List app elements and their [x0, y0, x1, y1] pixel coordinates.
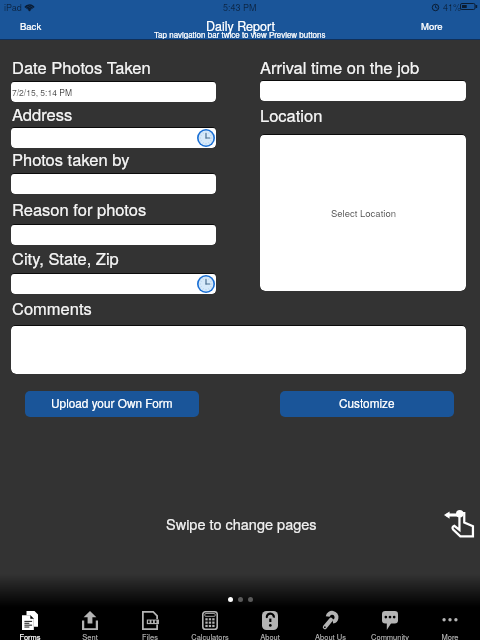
button[interactable]: More [420, 608, 480, 640]
staticText: Address [12, 102, 73, 126]
button[interactable] [11, 225, 216, 245]
staticText: Forms [19, 631, 41, 640]
staticText: Customize [339, 394, 395, 411]
staticText: About Us [315, 631, 346, 640]
button[interactable]: Community [360, 608, 420, 640]
staticText: Upload your Own Form [51, 394, 173, 411]
staticText: iPad [4, 1, 22, 14]
staticText: Files [142, 631, 158, 640]
button[interactable] [11, 128, 216, 148]
button[interactable]: Upload your Own Form [25, 391, 199, 417]
staticText: Date Photos Taken [12, 55, 151, 79]
staticText: 7/2/15, 5:14 PM [12, 86, 73, 98]
staticText: Reason for photos [12, 197, 147, 221]
button[interactable]: Back [10, 16, 52, 36]
staticText: Sent [82, 631, 98, 640]
staticText: Location [260, 103, 323, 127]
button[interactable]: Calculators [180, 608, 240, 640]
button[interactable]: Swipe to change pages [444, 510, 474, 537]
button[interactable]: Forms [0, 608, 60, 640]
button[interactable] [11, 174, 216, 194]
button[interactable]: Sent [60, 608, 120, 640]
staticText: Comments [12, 296, 92, 320]
staticText: More [441, 631, 459, 640]
button[interactable]: More [411, 16, 453, 36]
staticText: Photos taken by [12, 147, 130, 171]
button[interactable]: Files [120, 608, 180, 640]
button[interactable] [11, 274, 216, 294]
staticText: Back [20, 19, 42, 33]
staticText: 5:43 PM [223, 1, 257, 14]
button[interactable] [260, 81, 466, 101]
button[interactable]: Customize [280, 391, 454, 417]
staticText: About [260, 631, 280, 640]
staticText: Community [371, 631, 409, 640]
staticText: City, State, Zip [12, 246, 119, 270]
button[interactable]: Select Location [260, 135, 466, 291]
button[interactable] [11, 326, 466, 374]
staticText: Arrival time on the job [260, 55, 420, 79]
staticText: Swipe to change pages [166, 513, 317, 534]
staticText: Calculators [191, 631, 229, 640]
staticText: 41% [443, 1, 462, 14]
staticText: More [421, 19, 443, 33]
staticText: Daily Report [206, 17, 275, 35]
button[interactable]: 7/2/15, 5:14 PM [11, 82, 216, 102]
staticText: Tap navigation bar twice to view Preview… [154, 29, 326, 40]
button[interactable]: About [240, 608, 300, 640]
button[interactable]: About Us [300, 608, 360, 640]
staticText: Select Location [331, 206, 396, 220]
